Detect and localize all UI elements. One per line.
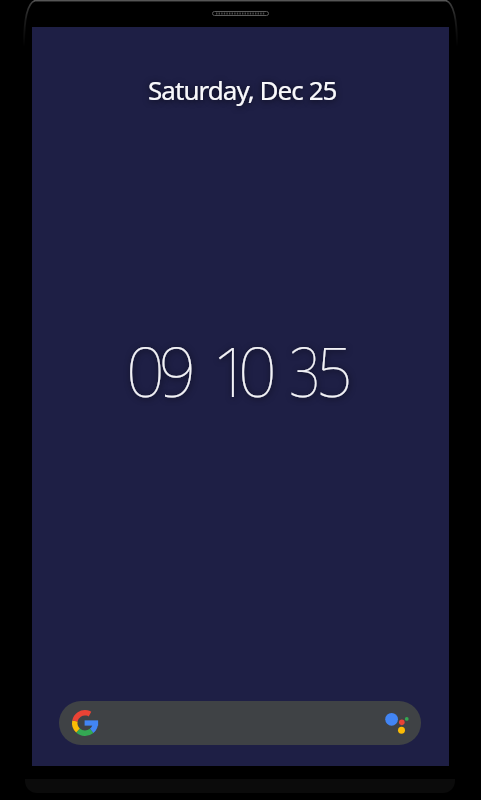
staticText: Saturday, Dec 25 — [148, 72, 337, 107]
button[interactable]: Saturday, Dec 25 — [148, 72, 337, 107]
button[interactable]: Google Assistant — [385, 712, 407, 734]
staticText: 3 — [289, 324, 321, 417]
button[interactable]: Google Search — [72, 710, 98, 736]
staticText: 5 — [316, 324, 353, 417]
staticText: 0 — [238, 324, 277, 417]
staticText: 9 — [159, 324, 196, 417]
other: Google Assistant — [385, 712, 407, 734]
button[interactable]: Google Search — [59, 701, 421, 745]
staticText: 1 — [212, 324, 251, 417]
other: Google Search — [72, 710, 98, 736]
staticText: 0 — [126, 324, 165, 417]
